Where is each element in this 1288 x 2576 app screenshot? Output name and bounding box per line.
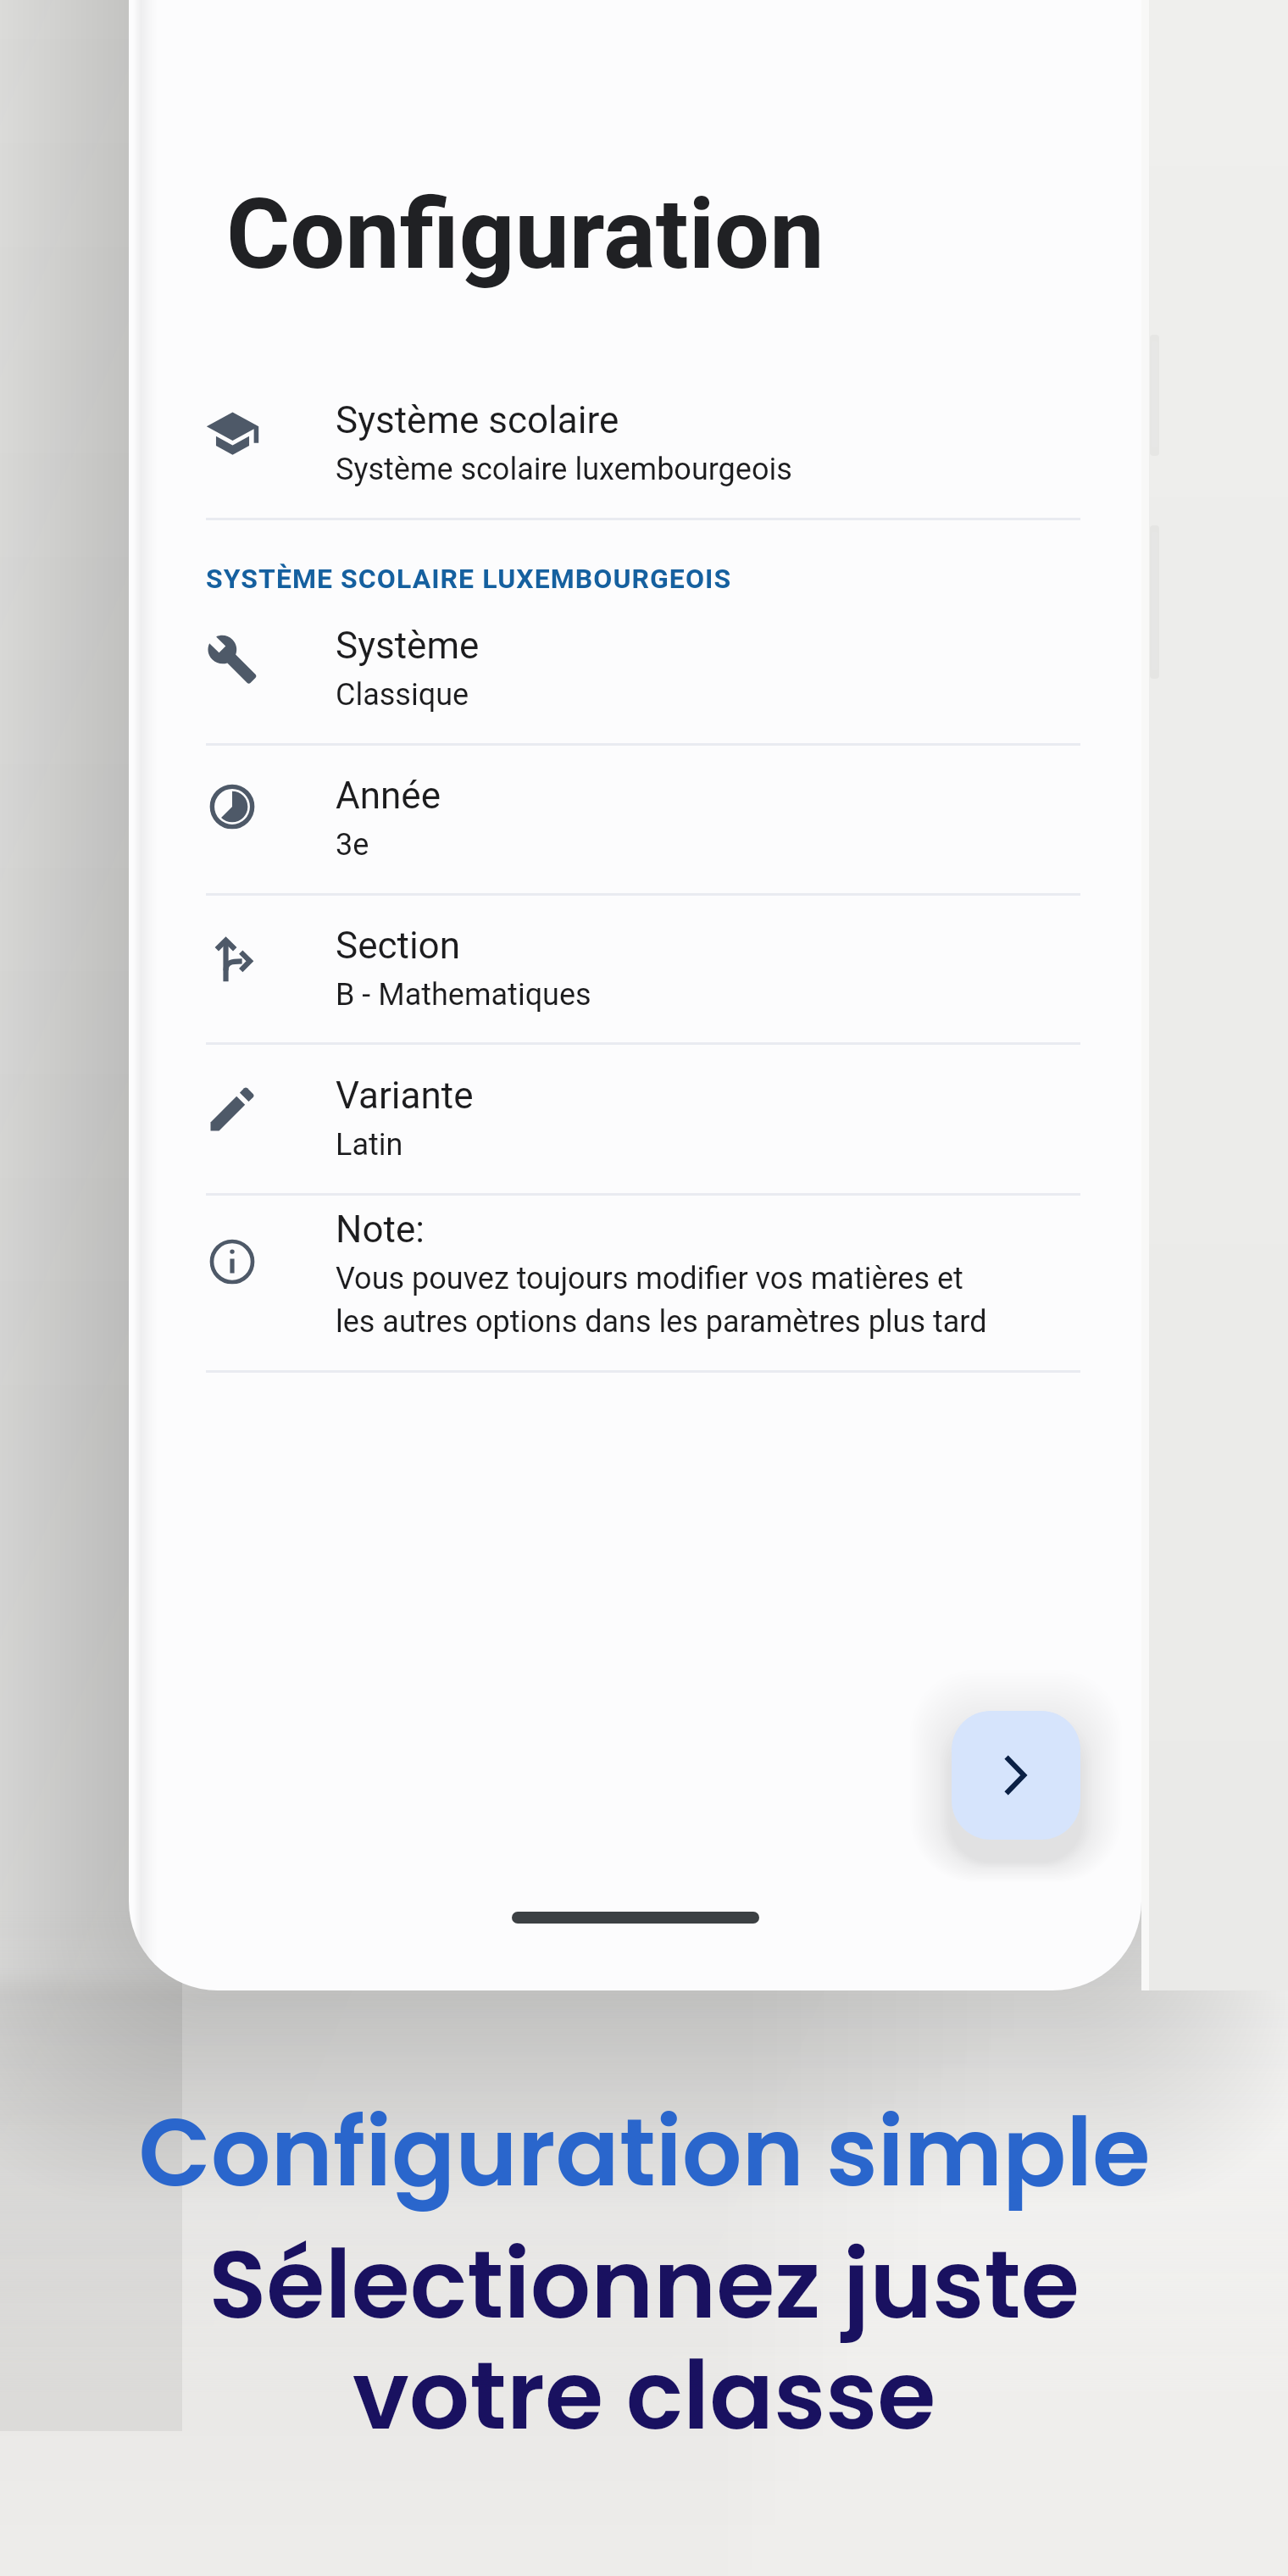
staticText: Section xyxy=(336,924,460,968)
button[interactable]: Suivant xyxy=(952,1711,1080,1840)
staticText: Système scolaire luxembourgeois xyxy=(336,452,792,487)
staticText: SYSTÈME SCOLAIRE LUXEMBOURGEOIS xyxy=(206,563,732,595)
button[interactable] xyxy=(206,376,1080,518)
staticText: Vous pouvez toujours modifier vos matièr… xyxy=(336,1261,987,1339)
staticText: Système scolaire xyxy=(336,398,619,442)
button[interactable] xyxy=(206,1052,1080,1193)
staticText: Note: xyxy=(336,1207,425,1252)
staticText: Latin xyxy=(336,1127,403,1163)
staticText: Classique xyxy=(336,677,469,713)
staticText: Configuration simple xyxy=(138,2086,1151,2218)
staticText: Variante xyxy=(336,1074,474,1118)
staticText: B - Mathematiques xyxy=(336,977,591,1013)
staticText: Sélectionnez juste votre classe xyxy=(208,2218,1080,2462)
button[interactable] xyxy=(206,902,1080,1042)
button[interactable] xyxy=(206,752,1080,893)
staticText: Année xyxy=(336,774,441,818)
staticText: Configuration xyxy=(226,177,824,291)
button[interactable] xyxy=(206,602,1080,743)
button[interactable] xyxy=(206,1185,1080,1370)
staticText: Système xyxy=(336,624,480,668)
staticText: 3e xyxy=(336,827,369,863)
